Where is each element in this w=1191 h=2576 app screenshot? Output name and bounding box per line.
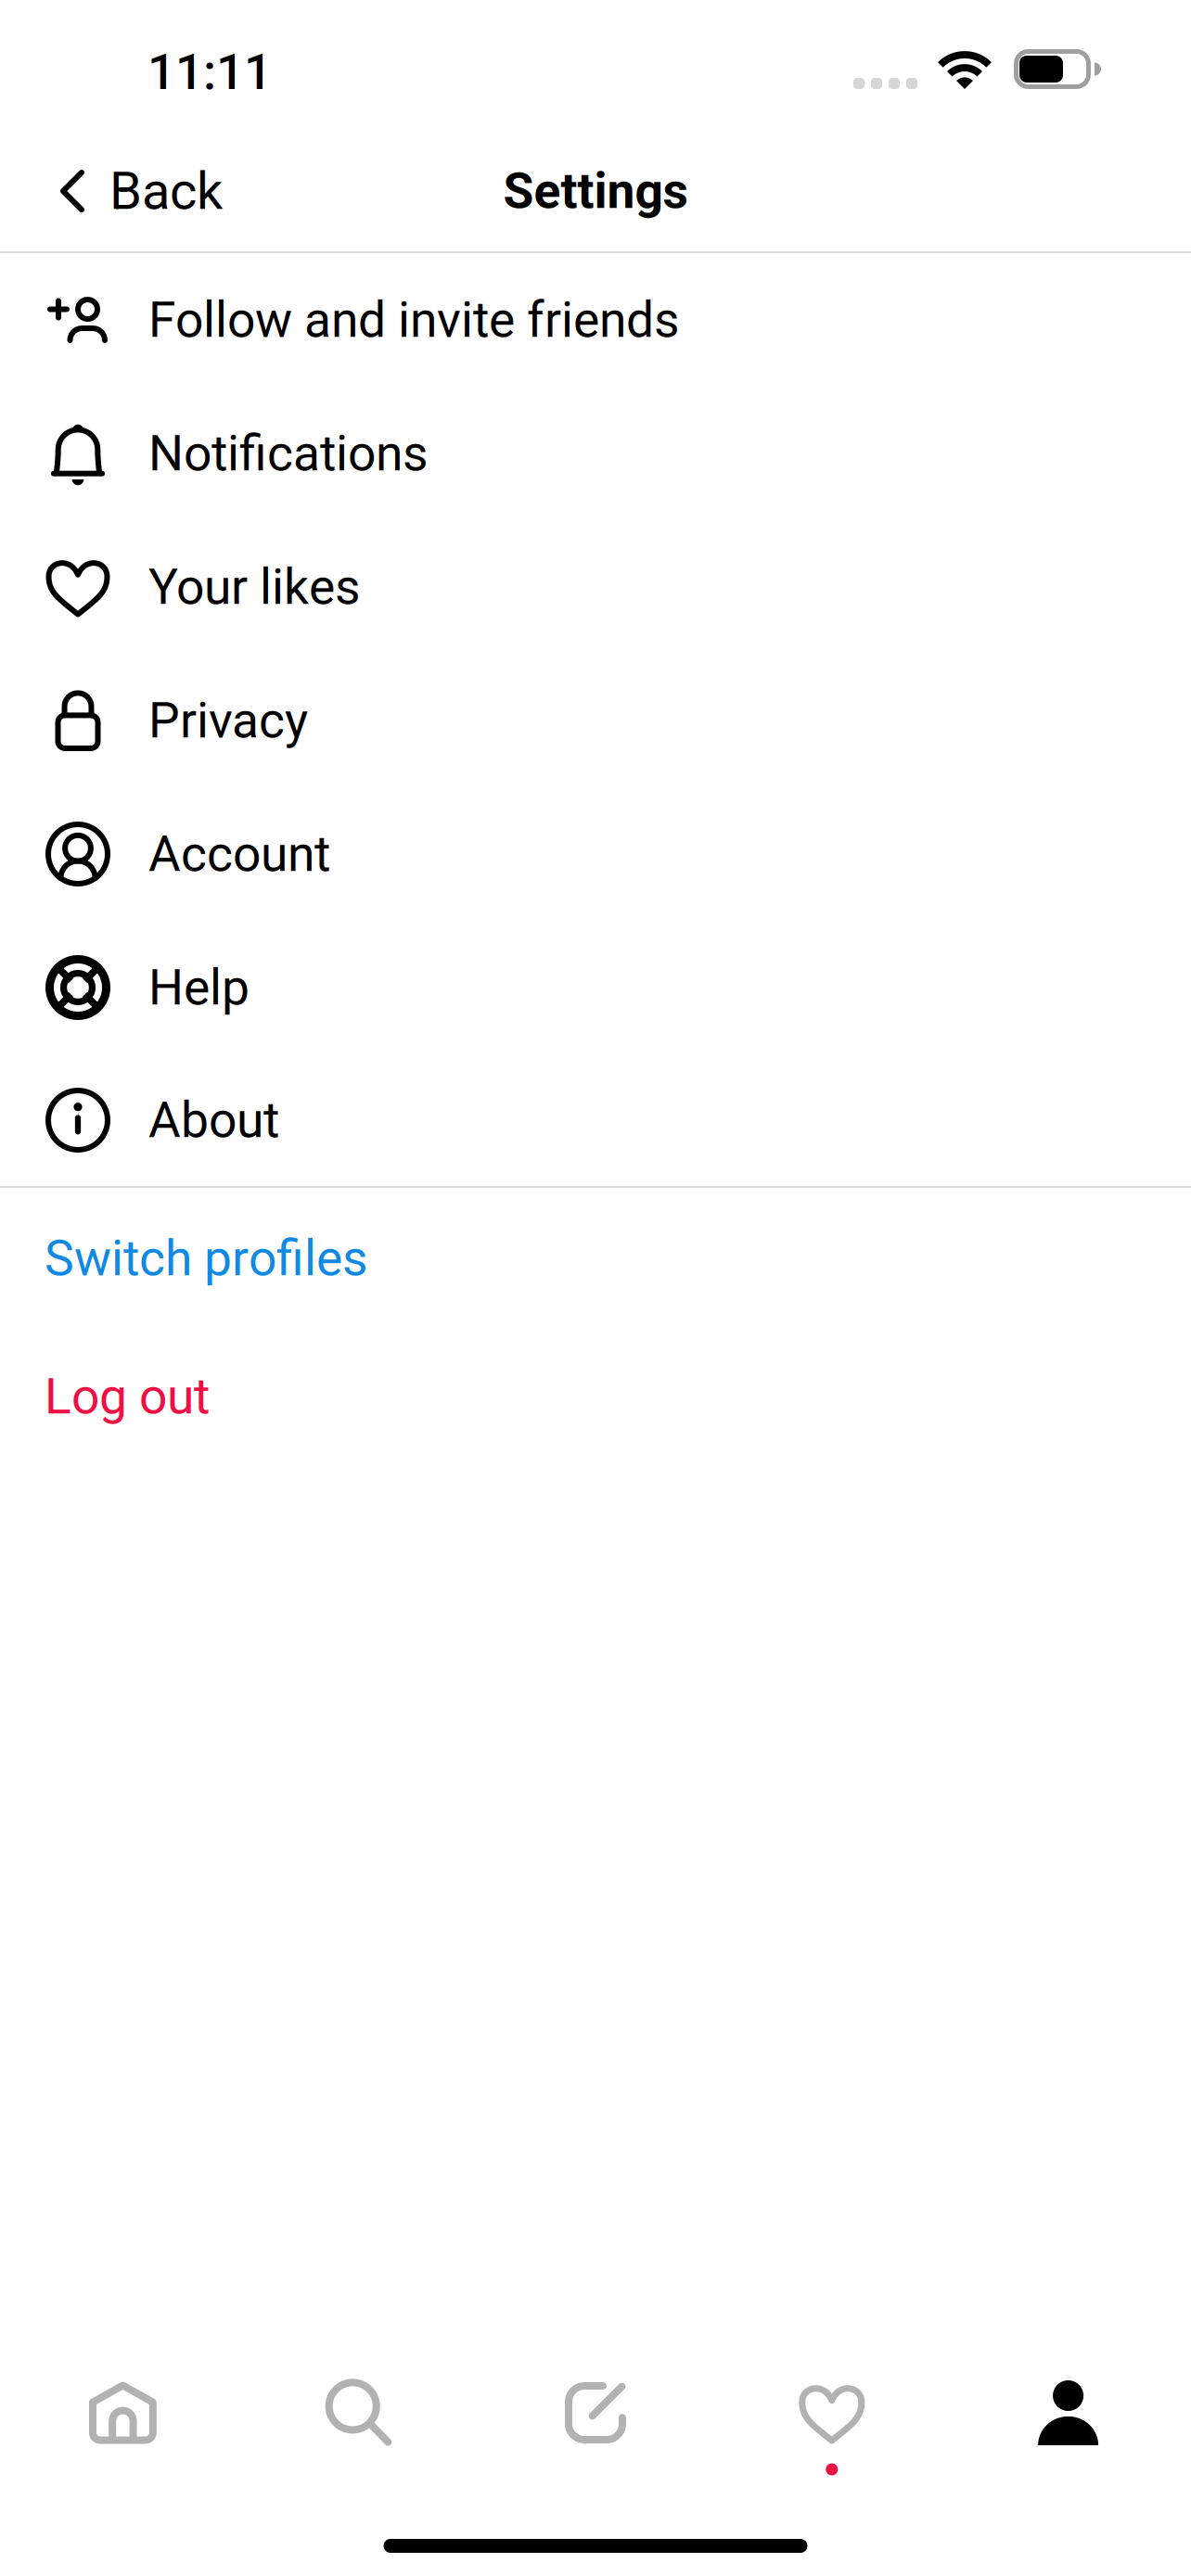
button[interactable]: Log out: [0, 1326, 1191, 1467]
staticText: Follow and invite friends: [148, 291, 680, 349]
staticText: About: [148, 1091, 279, 1149]
button[interactable]: Home: [5, 2344, 241, 2481]
staticText: Switch profiles: [45, 1229, 368, 1287]
button[interactable]: Account: [0, 787, 1191, 921]
button[interactable]: About: [0, 1054, 1191, 1186]
staticText: Your likes: [148, 558, 361, 616]
staticText: Log out: [45, 1368, 210, 1426]
button[interactable]: Follow and invite friends: [0, 253, 1191, 387]
staticText: Notifications: [148, 425, 429, 482]
button[interactable]: Help: [0, 921, 1191, 1054]
button[interactable]: Create: [477, 2344, 714, 2481]
button[interactable]: Notifications: [0, 387, 1191, 520]
button[interactable]: Back: [0, 137, 223, 245]
button[interactable]: Profile: [950, 2344, 1186, 2481]
button[interactable]: Privacy: [0, 654, 1191, 787]
staticText: Back: [109, 161, 223, 221]
button[interactable]: Switch profiles: [0, 1188, 1191, 1326]
staticText: 11:11: [147, 43, 272, 101]
button[interactable]: Search: [241, 2344, 477, 2481]
staticText: Account: [148, 825, 330, 883]
staticText: Help: [148, 959, 250, 1017]
staticText: Settings: [503, 162, 688, 220]
button[interactable]: Activity: [714, 2344, 950, 2481]
staticText: Privacy: [148, 692, 308, 750]
button[interactable]: Your likes: [0, 520, 1191, 654]
